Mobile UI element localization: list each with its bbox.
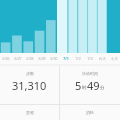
button[interactable]: 步数	[0, 66, 59, 104]
staticText: 时	[82, 85, 87, 91]
staticText: 7/1	[63, 56, 69, 61]
staticText: 6/27	[14, 56, 22, 61]
staticText: 31,310	[12, 78, 47, 93]
staticText: 分	[100, 85, 105, 91]
button[interactable]: 6/29	[36, 53, 48, 64]
button[interactable]: 7/2	[72, 53, 84, 64]
staticText: 5	[75, 78, 82, 93]
button[interactable]: 6/26	[0, 53, 12, 64]
button[interactable]: 今天	[108, 53, 120, 64]
staticText: 活动时间	[82, 71, 98, 76]
button[interactable]: 7/1	[60, 53, 72, 64]
button[interactable]: 里程	[0, 105, 59, 120]
staticText: 消耗	[86, 110, 94, 115]
staticText: 7/2	[75, 56, 81, 61]
staticText: 6/30	[50, 56, 58, 61]
staticText: 6/26	[2, 56, 10, 61]
staticText: 6/28	[26, 56, 34, 61]
button[interactable]: 6/27	[12, 53, 24, 64]
button[interactable]: 昨天	[96, 53, 108, 64]
staticText: 今天	[111, 57, 118, 61]
button[interactable]: Activity bar chart	[0, 0, 120, 53]
button[interactable]: 6/30	[48, 53, 60, 64]
staticText: 步数	[26, 71, 34, 76]
staticText: 7/3	[87, 56, 93, 61]
staticText: 49	[87, 78, 100, 93]
staticText: 昨天	[99, 57, 106, 61]
staticText: 里程	[26, 110, 34, 115]
button[interactable]: 7/3	[84, 53, 96, 64]
button[interactable]: 活动时间	[60, 66, 120, 104]
staticText: 6/29	[38, 56, 46, 61]
button[interactable]: 消耗	[60, 105, 120, 120]
button[interactable]: 6/28	[24, 53, 36, 64]
